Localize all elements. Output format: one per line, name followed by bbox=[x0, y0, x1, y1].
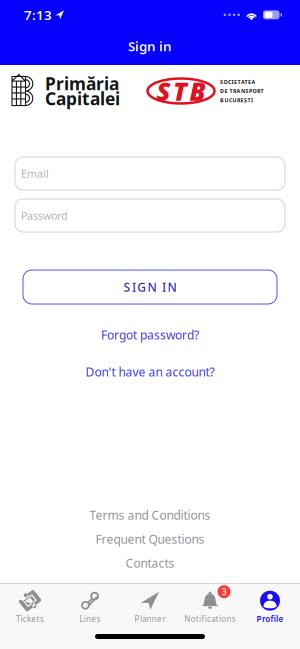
button[interactable]: SIGN IN bbox=[23, 270, 277, 304]
staticText: Email bbox=[21, 166, 49, 181]
staticText: 7:13 bbox=[24, 6, 52, 24]
button[interactable]: Email bbox=[15, 157, 285, 190]
button[interactable]: Profile bbox=[240, 591, 300, 624]
staticText: Capitalei bbox=[45, 87, 120, 110]
staticText: STB bbox=[156, 74, 205, 108]
staticText: Profile bbox=[257, 614, 283, 624]
button[interactable]: Planner bbox=[120, 591, 180, 624]
staticText: BUCUREȘTI bbox=[220, 96, 253, 104]
staticText: Primăria bbox=[45, 72, 119, 95]
staticText: Forgot password? bbox=[101, 327, 199, 343]
staticText: DE TRANSPORT bbox=[220, 87, 263, 95]
staticText: 3 bbox=[221, 585, 226, 598]
button[interactable]: 3 bbox=[180, 591, 240, 624]
staticText: SIGN IN bbox=[124, 279, 176, 295]
staticText: SOCIETATEA bbox=[220, 78, 255, 85]
button[interactable]: Terms and Conditions bbox=[89, 507, 210, 523]
staticText: Tickets bbox=[16, 614, 44, 624]
staticText: Don't have an account? bbox=[85, 364, 214, 380]
staticText: Terms and Conditions bbox=[89, 507, 210, 523]
staticText: Notifications bbox=[184, 614, 236, 624]
staticText: Contacts bbox=[125, 555, 174, 571]
button[interactable]: Contacts bbox=[125, 555, 174, 571]
button[interactable]: Don't have an account? bbox=[85, 364, 214, 380]
staticText: Frequent Questions bbox=[95, 531, 204, 547]
staticText: Sign in bbox=[128, 37, 172, 55]
staticText: Lines bbox=[79, 614, 101, 624]
button[interactable]: Forgot password? bbox=[101, 327, 199, 343]
button[interactable]: Password bbox=[15, 199, 285, 232]
button[interactable]: Lines bbox=[60, 591, 120, 624]
staticText: Password bbox=[21, 208, 68, 223]
button[interactable]: Tickets bbox=[0, 591, 60, 624]
staticText: Planner bbox=[135, 614, 165, 624]
button[interactable]: Frequent Questions bbox=[95, 531, 204, 547]
